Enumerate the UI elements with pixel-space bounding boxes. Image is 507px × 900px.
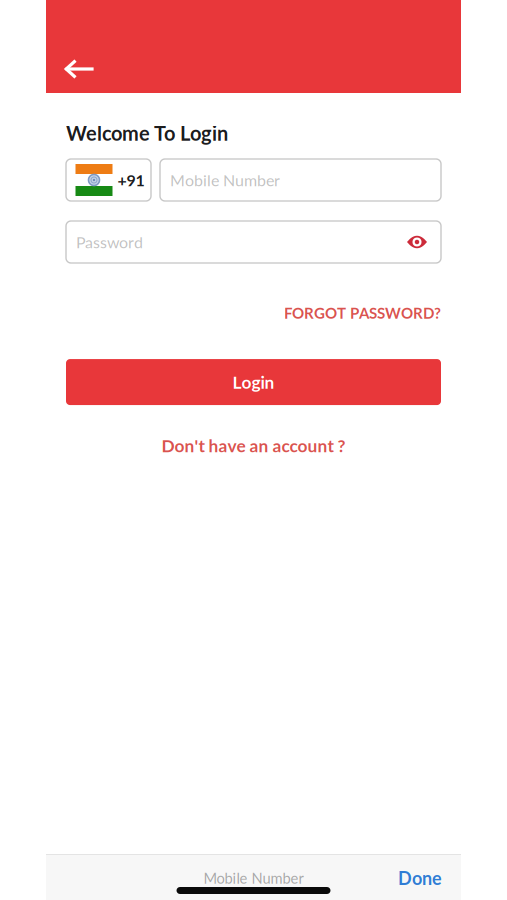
staticText: Login bbox=[232, 372, 274, 392]
button[interactable]: FORGOT PASSWORD? bbox=[284, 304, 441, 322]
button[interactable]: Login bbox=[66, 359, 441, 405]
staticText: Don't have an account ? bbox=[161, 435, 345, 456]
staticText: Welcome To Login bbox=[66, 121, 228, 145]
staticText: Done bbox=[398, 867, 442, 889]
staticText: FORGOT PASSWORD? bbox=[284, 304, 441, 322]
staticText: Mobile Number bbox=[203, 869, 303, 887]
button[interactable]: Back bbox=[46, 0, 113, 93]
staticText: Mobile Number bbox=[170, 170, 280, 190]
button[interactable]: Don't have an account ? bbox=[161, 435, 345, 456]
staticText: Password bbox=[76, 232, 143, 252]
button[interactable]: Password bbox=[66, 221, 441, 263]
button[interactable]: Mobile Number bbox=[160, 159, 441, 201]
staticText: +91 bbox=[117, 170, 144, 190]
button[interactable]: Done bbox=[398, 865, 442, 891]
button[interactable]: Country code +91 bbox=[66, 159, 151, 201]
